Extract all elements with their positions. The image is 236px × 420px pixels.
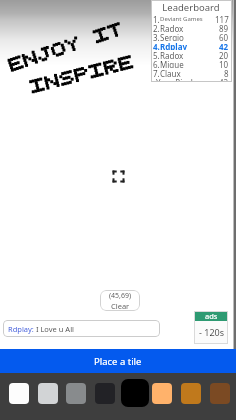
staticText: 20 xyxy=(219,50,229,59)
button[interactable]: Colour 3 xyxy=(66,383,86,404)
button[interactable]: Colour 2 xyxy=(38,383,58,404)
staticText: 8 xyxy=(224,68,229,77)
button[interactable]: Colour 4 xyxy=(95,383,115,404)
staticText: 3. xyxy=(153,32,160,41)
staticText: Radox xyxy=(160,23,184,32)
staticText: Sergio xyxy=(160,32,184,41)
button[interactable]: Watch ad xyxy=(194,311,228,344)
staticText: Rdplay: xyxy=(8,324,34,334)
staticText: 117 xyxy=(215,14,229,23)
staticText: 6. xyxy=(153,59,160,68)
staticText: Place a tile xyxy=(94,355,142,368)
staticText: Rdplay xyxy=(160,41,188,50)
button[interactable]: Colour 7 xyxy=(181,383,201,404)
staticText: 10 xyxy=(219,59,229,68)
staticText: (45,69) xyxy=(109,291,132,301)
staticText: 42 xyxy=(219,41,229,50)
button[interactable]: (45,69) xyxy=(100,290,140,311)
staticText: 1. xyxy=(153,14,160,23)
staticText: I Love u All xyxy=(34,324,74,334)
button[interactable]: Selected colour xyxy=(121,379,149,407)
staticText: 4. xyxy=(153,41,160,50)
button[interactable]: Colour 1 xyxy=(9,383,29,404)
staticText: 60 xyxy=(219,32,229,41)
staticText: 2. xyxy=(153,23,160,32)
staticText: Leaderboard xyxy=(153,1,229,14)
button[interactable]: Colour 8 xyxy=(210,383,230,404)
staticText: Your Pixels: xyxy=(156,77,199,82)
staticText: 42 xyxy=(219,77,229,82)
staticText: ads xyxy=(205,311,218,321)
staticText: - 120s xyxy=(199,326,224,338)
staticText: Clear xyxy=(111,301,130,311)
staticText: Migue xyxy=(160,59,184,68)
staticText: 5. xyxy=(153,50,160,59)
button[interactable]: Rdplay: xyxy=(3,320,160,337)
button[interactable]: Place a tile xyxy=(0,349,236,373)
staticText: Radox xyxy=(160,50,184,59)
staticText: 7. xyxy=(153,68,160,77)
staticText: Deviant Games xyxy=(160,15,203,23)
button[interactable]: Colour 6 xyxy=(152,383,172,404)
staticText: Claux xyxy=(160,68,181,77)
staticText: 89 xyxy=(219,23,229,32)
